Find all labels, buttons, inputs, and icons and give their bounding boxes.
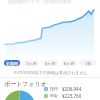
staticText: ポートフォリオ <box>4 80 47 88</box>
staticText: 全期間 <box>6 61 18 66</box>
button[interactable]: 1年 <box>80 60 96 66</box>
button[interactable]: 3ヶ月 <box>42 60 58 66</box>
staticText: 投信 <box>50 86 58 91</box>
button[interactable]: 1ヶ月 <box>23 60 39 66</box>
staticText: ¥223,760 <box>62 93 82 99</box>
staticText: 1年 <box>85 61 92 66</box>
staticText: 6ヶ月 <box>64 61 75 66</box>
staticText: 資産推移グラフ・評価額の推移 <box>8 0 72 5</box>
button[interactable]: 全期間 <box>4 60 20 66</box>
staticText: 現金 <box>50 93 58 98</box>
staticText: ¥206,944 <box>62 86 82 92</box>
button[interactable]: 6ヶ月 <box>61 60 77 66</box>
staticText: 3ヶ月 <box>45 61 56 66</box>
button[interactable]: 投信 <box>44 85 96 92</box>
staticText: 1ヶ月 <box>26 61 37 66</box>
button[interactable]: 現金 <box>44 92 96 99</box>
staticText: ※ ¥100,000以下の資産は表示されません <box>13 70 88 75</box>
